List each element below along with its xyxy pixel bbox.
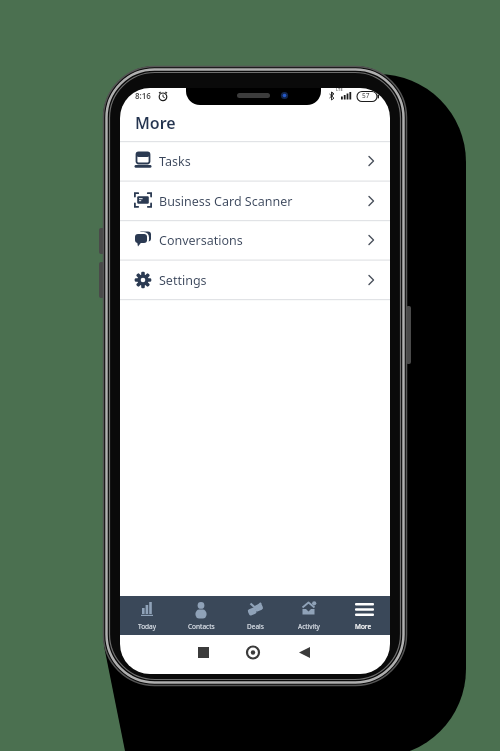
staticText: More — [135, 112, 176, 134]
staticText: Deals — [247, 622, 264, 631]
staticText: Contacts — [188, 622, 215, 631]
button[interactable]: Settings — [120, 260, 390, 300]
button[interactable]: Conversations — [120, 220, 390, 260]
button[interactable]: Business Card Scanner — [120, 181, 390, 221]
button[interactable]: Tasks — [120, 141, 390, 181]
staticText: 8:16 — [135, 90, 151, 101]
staticText: Conversations — [159, 232, 243, 249]
button[interactable]: Deals — [228, 596, 282, 635]
staticText: More — [355, 622, 372, 631]
button[interactable]: Today — [120, 596, 174, 635]
button[interactable]: More — [336, 596, 390, 635]
staticText: Today — [138, 622, 157, 631]
staticText: Activity — [298, 622, 320, 631]
staticText: Business Card Scanner — [159, 193, 293, 210]
staticText: LTE — [336, 88, 343, 92]
staticText: Settings — [159, 272, 207, 289]
button[interactable]: Activity — [282, 596, 336, 635]
button[interactable]: Contacts — [174, 596, 228, 635]
staticText: Tasks — [159, 153, 191, 170]
staticText: 57 — [362, 91, 370, 100]
